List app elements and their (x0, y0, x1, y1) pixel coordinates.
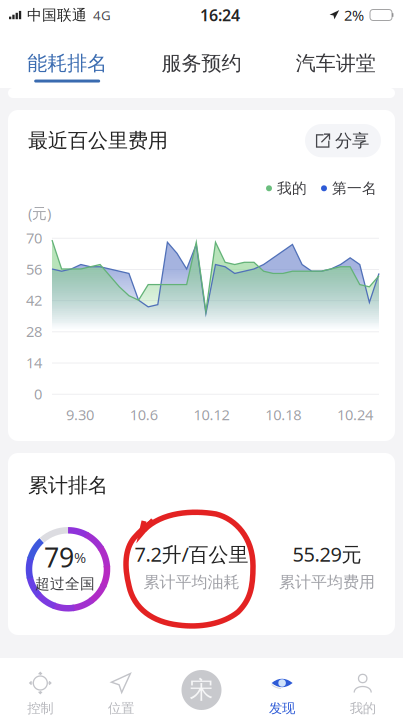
staticText: 10.12 (193, 405, 229, 424)
button[interactable]: 汽车讲堂 (269, 30, 403, 88)
staticText: 超过全国 (35, 575, 95, 593)
staticText: 28 (26, 322, 42, 341)
staticText: 10.18 (265, 405, 301, 424)
staticText: 2% (340, 5, 368, 25)
staticText: 10.6 (130, 405, 158, 424)
button[interactable]: 发现 (242, 658, 322, 716)
staticText: 发现 (269, 700, 295, 716)
staticText: 79 (44, 540, 74, 575)
staticText: 16:24 (200, 4, 240, 26)
staticText: 能耗排名 (27, 51, 107, 76)
button[interactable]: 能耗排名 (0, 30, 134, 88)
staticText: 0 (34, 384, 42, 403)
button[interactable]: 分享 (305, 124, 381, 157)
staticText: 最近百公里费用 (28, 128, 168, 153)
staticText: 汽车讲堂 (296, 51, 376, 76)
button[interactable]: 我的 (322, 658, 403, 716)
staticText: % (74, 547, 86, 567)
staticText: 14 (26, 353, 42, 372)
button[interactable]: 位置 (81, 658, 161, 716)
staticText: 42 (26, 290, 42, 310)
staticText: 7.2升/百公里 (134, 541, 248, 567)
button[interactable]: 控制 (0, 658, 81, 716)
staticText: 我的 (277, 179, 307, 197)
staticText: 服务预约 (161, 51, 241, 76)
staticText: 累计平均油耗 (143, 572, 239, 592)
button[interactable]: 服务预约 (134, 30, 269, 88)
staticText: 分享 (335, 130, 369, 151)
staticText: (元) (28, 203, 51, 223)
staticText: 控制 (27, 700, 53, 716)
staticText: 70 (26, 228, 42, 247)
staticText: 宋 (189, 675, 213, 705)
staticText: 4G (87, 6, 111, 24)
button[interactable]: 车辆 (161, 658, 242, 716)
staticText: 10.24 (337, 405, 373, 424)
staticText: 位置 (108, 700, 134, 716)
staticText: 55.29元 (292, 541, 361, 567)
staticText: 我的 (350, 700, 376, 716)
staticText: 中国联通 (23, 6, 87, 24)
staticText: 第一名 (332, 179, 377, 197)
staticText: 9.30 (66, 405, 94, 424)
staticText: 累计排名 (28, 473, 108, 498)
staticText: 累计平均费用 (279, 572, 375, 592)
staticText: 56 (26, 259, 42, 279)
